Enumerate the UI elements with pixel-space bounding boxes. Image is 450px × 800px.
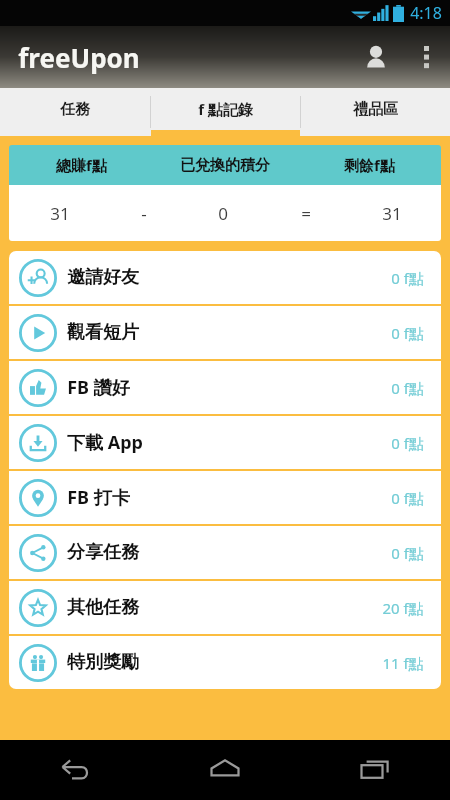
staticText: 特別獎勵 — [67, 651, 139, 674]
button[interactable]: 禮品區 — [301, 88, 450, 136]
staticText: freeUpon — [18, 40, 140, 75]
staticText: 下載 App — [67, 430, 143, 455]
button[interactable]: FB 打卡 — [9, 471, 441, 524]
staticText: 禮品區 — [353, 100, 398, 119]
staticText: 0 f點 — [391, 378, 424, 398]
staticText: 31 — [50, 202, 70, 225]
button[interactable]: Account — [350, 31, 402, 83]
button[interactable]: Back — [0, 740, 150, 800]
button[interactable]: 其他任務 — [9, 581, 441, 634]
staticText: 31 — [382, 202, 402, 225]
button[interactable]: 邀請好友 — [9, 251, 441, 304]
staticText: 任務 — [60, 100, 90, 119]
staticText: 分享任務 — [67, 541, 139, 564]
staticText: = — [301, 202, 311, 225]
staticText: 總賺f點 — [56, 155, 107, 175]
staticText: f 點記錄 — [198, 99, 253, 119]
staticText: 0 f點 — [391, 323, 424, 343]
button[interactable]: 分享任務 — [9, 526, 441, 579]
staticText: 已兌換的積分 — [180, 156, 270, 175]
staticText: 11 f點 — [382, 653, 424, 673]
staticText: 邀請好友 — [67, 266, 139, 289]
button[interactable]: More options — [402, 33, 450, 81]
staticText: 0 — [218, 202, 228, 225]
staticText: 0 f點 — [391, 543, 424, 563]
staticText: FB 打卡 — [67, 485, 130, 510]
button[interactable]: Home — [150, 740, 300, 800]
staticText: 其他任務 — [67, 596, 139, 619]
staticText: 0 f點 — [391, 268, 424, 288]
staticText: 4:18 — [410, 2, 442, 24]
staticText: 0 f點 — [391, 488, 424, 508]
button[interactable]: f 點記錄 — [151, 88, 300, 136]
button[interactable]: 觀看短片 — [9, 306, 441, 359]
staticText: 20 f點 — [382, 598, 424, 618]
staticText: 0 f點 — [391, 433, 424, 453]
button[interactable]: 下載 App — [9, 416, 441, 469]
button[interactable]: 任務 — [0, 88, 150, 136]
button[interactable]: Recent apps — [300, 740, 450, 800]
staticText: FB 讚好 — [67, 375, 130, 400]
button[interactable]: FB 讚好 — [9, 361, 441, 414]
staticText: 剩餘f點 — [344, 155, 395, 175]
staticText: 觀看短片 — [67, 321, 139, 344]
staticText: - — [141, 202, 147, 225]
button[interactable]: 特別獎勵 — [9, 636, 441, 689]
